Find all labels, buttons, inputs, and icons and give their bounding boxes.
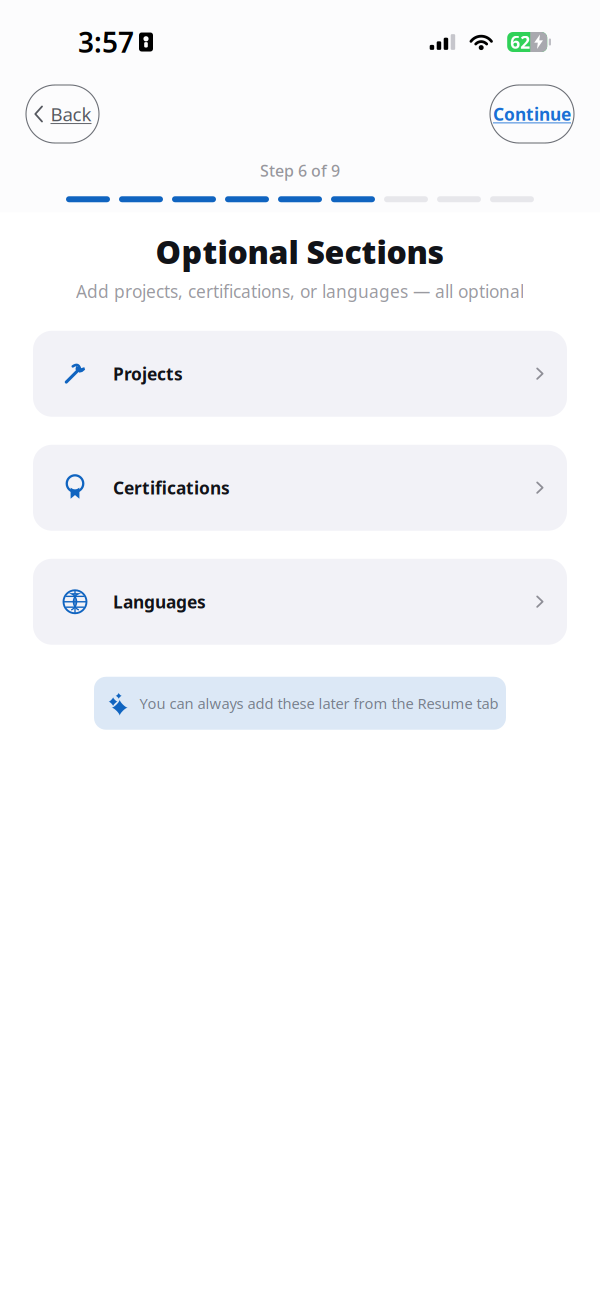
button[interactable]: Back [26,85,99,143]
button[interactable]: Projects [33,331,567,417]
staticText: Certifications [113,476,230,499]
button[interactable]: Continue [490,85,574,143]
staticText: Continue [493,102,571,125]
staticText: Step 6 of 9 [260,160,340,181]
staticText: 3:57 [78,23,134,61]
staticText: Languages [113,590,206,613]
staticText: Add projects, certifications, or languag… [76,280,524,303]
button[interactable]: Certifications [33,445,567,531]
staticText: 62 [510,30,530,53]
staticText: You can always add these later from the … [139,693,498,713]
staticText: Back [50,102,91,126]
staticText: Projects [113,362,183,385]
button[interactable]: Languages [33,559,567,645]
staticText: Optional Sections [155,230,444,273]
button[interactable]: You can always add these later from the … [94,677,506,730]
